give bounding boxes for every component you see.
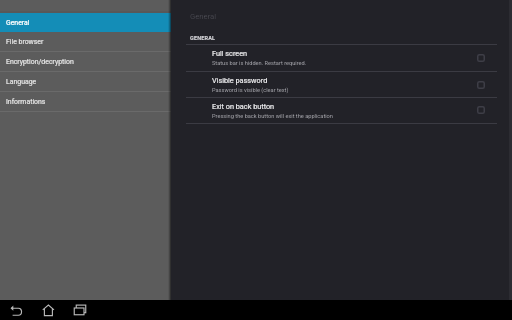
button[interactable]: File browser xyxy=(0,32,171,52)
button[interactable]: General xyxy=(0,13,171,32)
button[interactable]: Full screen xyxy=(171,44,512,71)
button[interactable]: Visible password xyxy=(171,71,512,98)
staticText: Visible password xyxy=(212,76,268,85)
button[interactable]: Exit on back button xyxy=(171,97,512,123)
staticText: General xyxy=(6,19,30,27)
staticText: General xyxy=(190,12,217,21)
button[interactable]: Home xyxy=(33,300,65,320)
staticText: Password is visible (clear text) xyxy=(212,87,289,94)
staticText: File browser xyxy=(6,38,44,46)
button[interactable]: Encryption/decryption xyxy=(0,52,171,72)
button[interactable]: Back xyxy=(0,300,33,320)
staticText: Informations xyxy=(6,98,46,106)
staticText: Full screen xyxy=(212,49,248,58)
staticText: Encryption/decryption xyxy=(6,58,74,66)
staticText: Exit on back button xyxy=(212,102,275,111)
button[interactable]: Informations xyxy=(0,92,171,112)
staticText: GENERAL xyxy=(190,35,216,41)
staticText: Pressing the back button will exit the a… xyxy=(212,113,333,120)
button[interactable]: Language xyxy=(0,72,171,92)
button[interactable]: Recent apps xyxy=(65,300,97,320)
staticText: Language xyxy=(6,78,37,86)
staticText: Status bar is hidden. Restart required. xyxy=(212,60,307,67)
